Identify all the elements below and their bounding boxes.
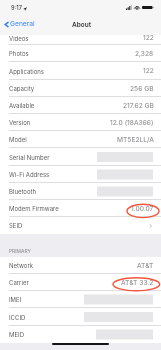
staticText: PRIMARY: [9, 248, 31, 254]
button[interactable]: General: [3, 20, 35, 28]
staticText: General: [10, 20, 35, 28]
button[interactable]: Bluetooth: [0, 183, 161, 200]
button[interactable]: Network: [0, 257, 161, 274]
button[interactable]: Wi-Fi Address: [0, 166, 161, 183]
button[interactable]: Serial Number: [0, 148, 161, 166]
staticText: 1.00.07: [131, 205, 154, 213]
staticText: AT&T: [137, 262, 154, 270]
staticText: AT&T 33.2: [121, 279, 154, 287]
staticText: Available: [9, 102, 35, 109]
staticText: 9:17: [11, 5, 22, 12]
staticText: Carrier: [9, 279, 29, 286]
staticText: 122: [143, 67, 154, 75]
staticText: Model: [9, 136, 27, 143]
staticText: MEID: [9, 331, 24, 338]
staticText: Capacity: [9, 85, 35, 92]
staticText: Applications: [9, 68, 44, 75]
staticText: IMEI: [9, 296, 22, 303]
button[interactable]: Carrier: [0, 274, 161, 291]
staticText: Version: [9, 119, 31, 126]
button[interactable]: ICCID: [0, 308, 161, 326]
button[interactable]: Version: [0, 114, 161, 131]
staticText: 12.0 (18A366): [110, 119, 154, 127]
staticText: 256 GB: [130, 85, 154, 93]
button[interactable]: Capacity: [0, 80, 161, 97]
staticText: Photos: [9, 50, 29, 57]
staticText: 122: [143, 34, 154, 42]
button[interactable]: SEID: [0, 217, 161, 234]
button[interactable]: Applications: [0, 62, 161, 80]
staticText: MT5E2LL/A: [117, 136, 154, 144]
button[interactable]: Modem Firmware: [0, 200, 161, 217]
button[interactable]: IMEI: [0, 291, 161, 308]
button[interactable]: MEID: [0, 326, 161, 343]
staticText: Bluetooth: [9, 188, 37, 195]
staticText: Network: [9, 262, 34, 269]
staticText: Modem Firmware: [9, 205, 59, 212]
button[interactable]: Available: [0, 97, 161, 114]
staticText: Wi-Fi Address: [9, 171, 50, 178]
staticText: Videos: [9, 35, 29, 42]
staticText: Serial Number: [9, 154, 50, 161]
staticText: SEID: [9, 222, 23, 229]
button[interactable]: Photos: [0, 45, 161, 62]
button[interactable]: Videos: [0, 35, 161, 45]
staticText: 2,328: [135, 50, 154, 58]
staticText: ICCID: [9, 314, 26, 321]
button[interactable]: Model: [0, 131, 161, 148]
staticText: About: [72, 21, 92, 29]
staticText: 217.62 GB: [123, 102, 154, 110]
